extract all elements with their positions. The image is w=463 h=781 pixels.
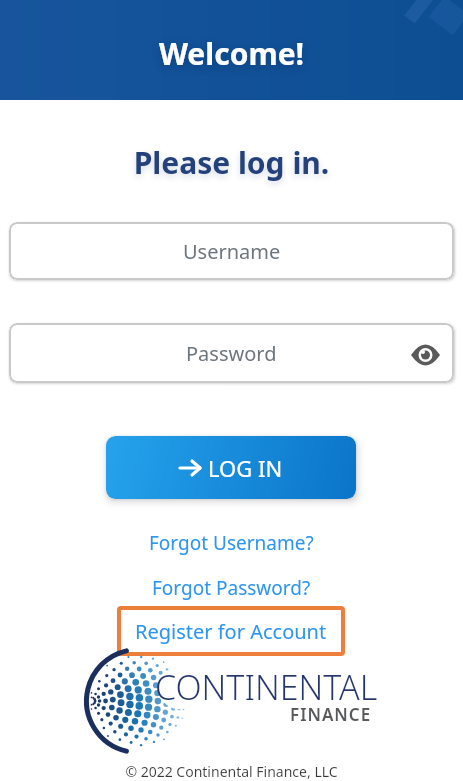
staticText: FINANCE (290, 703, 372, 726)
staticText: Please log in. (0, 142, 463, 183)
staticText: Username (183, 238, 281, 265)
staticText: Register for Account (135, 618, 327, 645)
button[interactable] (411, 344, 440, 366)
button[interactable]: Register for Account (117, 606, 345, 656)
staticText: LOG IN (208, 453, 283, 483)
button[interactable]: Username (9, 222, 454, 280)
staticText: Welcome! (0, 33, 463, 74)
staticText: Forgot Username? (149, 530, 314, 556)
staticText: Forgot Password? (152, 575, 311, 601)
button[interactable]: Forgot Username? (130, 529, 333, 557)
staticText: © 2022 Continental Finance, LLC (0, 762, 463, 781)
button[interactable]: LOG IN (106, 436, 356, 499)
staticText: CONTINENTAL (155, 664, 378, 710)
button[interactable]: Forgot Password? (130, 574, 333, 602)
staticText: Password (186, 340, 277, 367)
button[interactable]: Password (9, 323, 454, 383)
